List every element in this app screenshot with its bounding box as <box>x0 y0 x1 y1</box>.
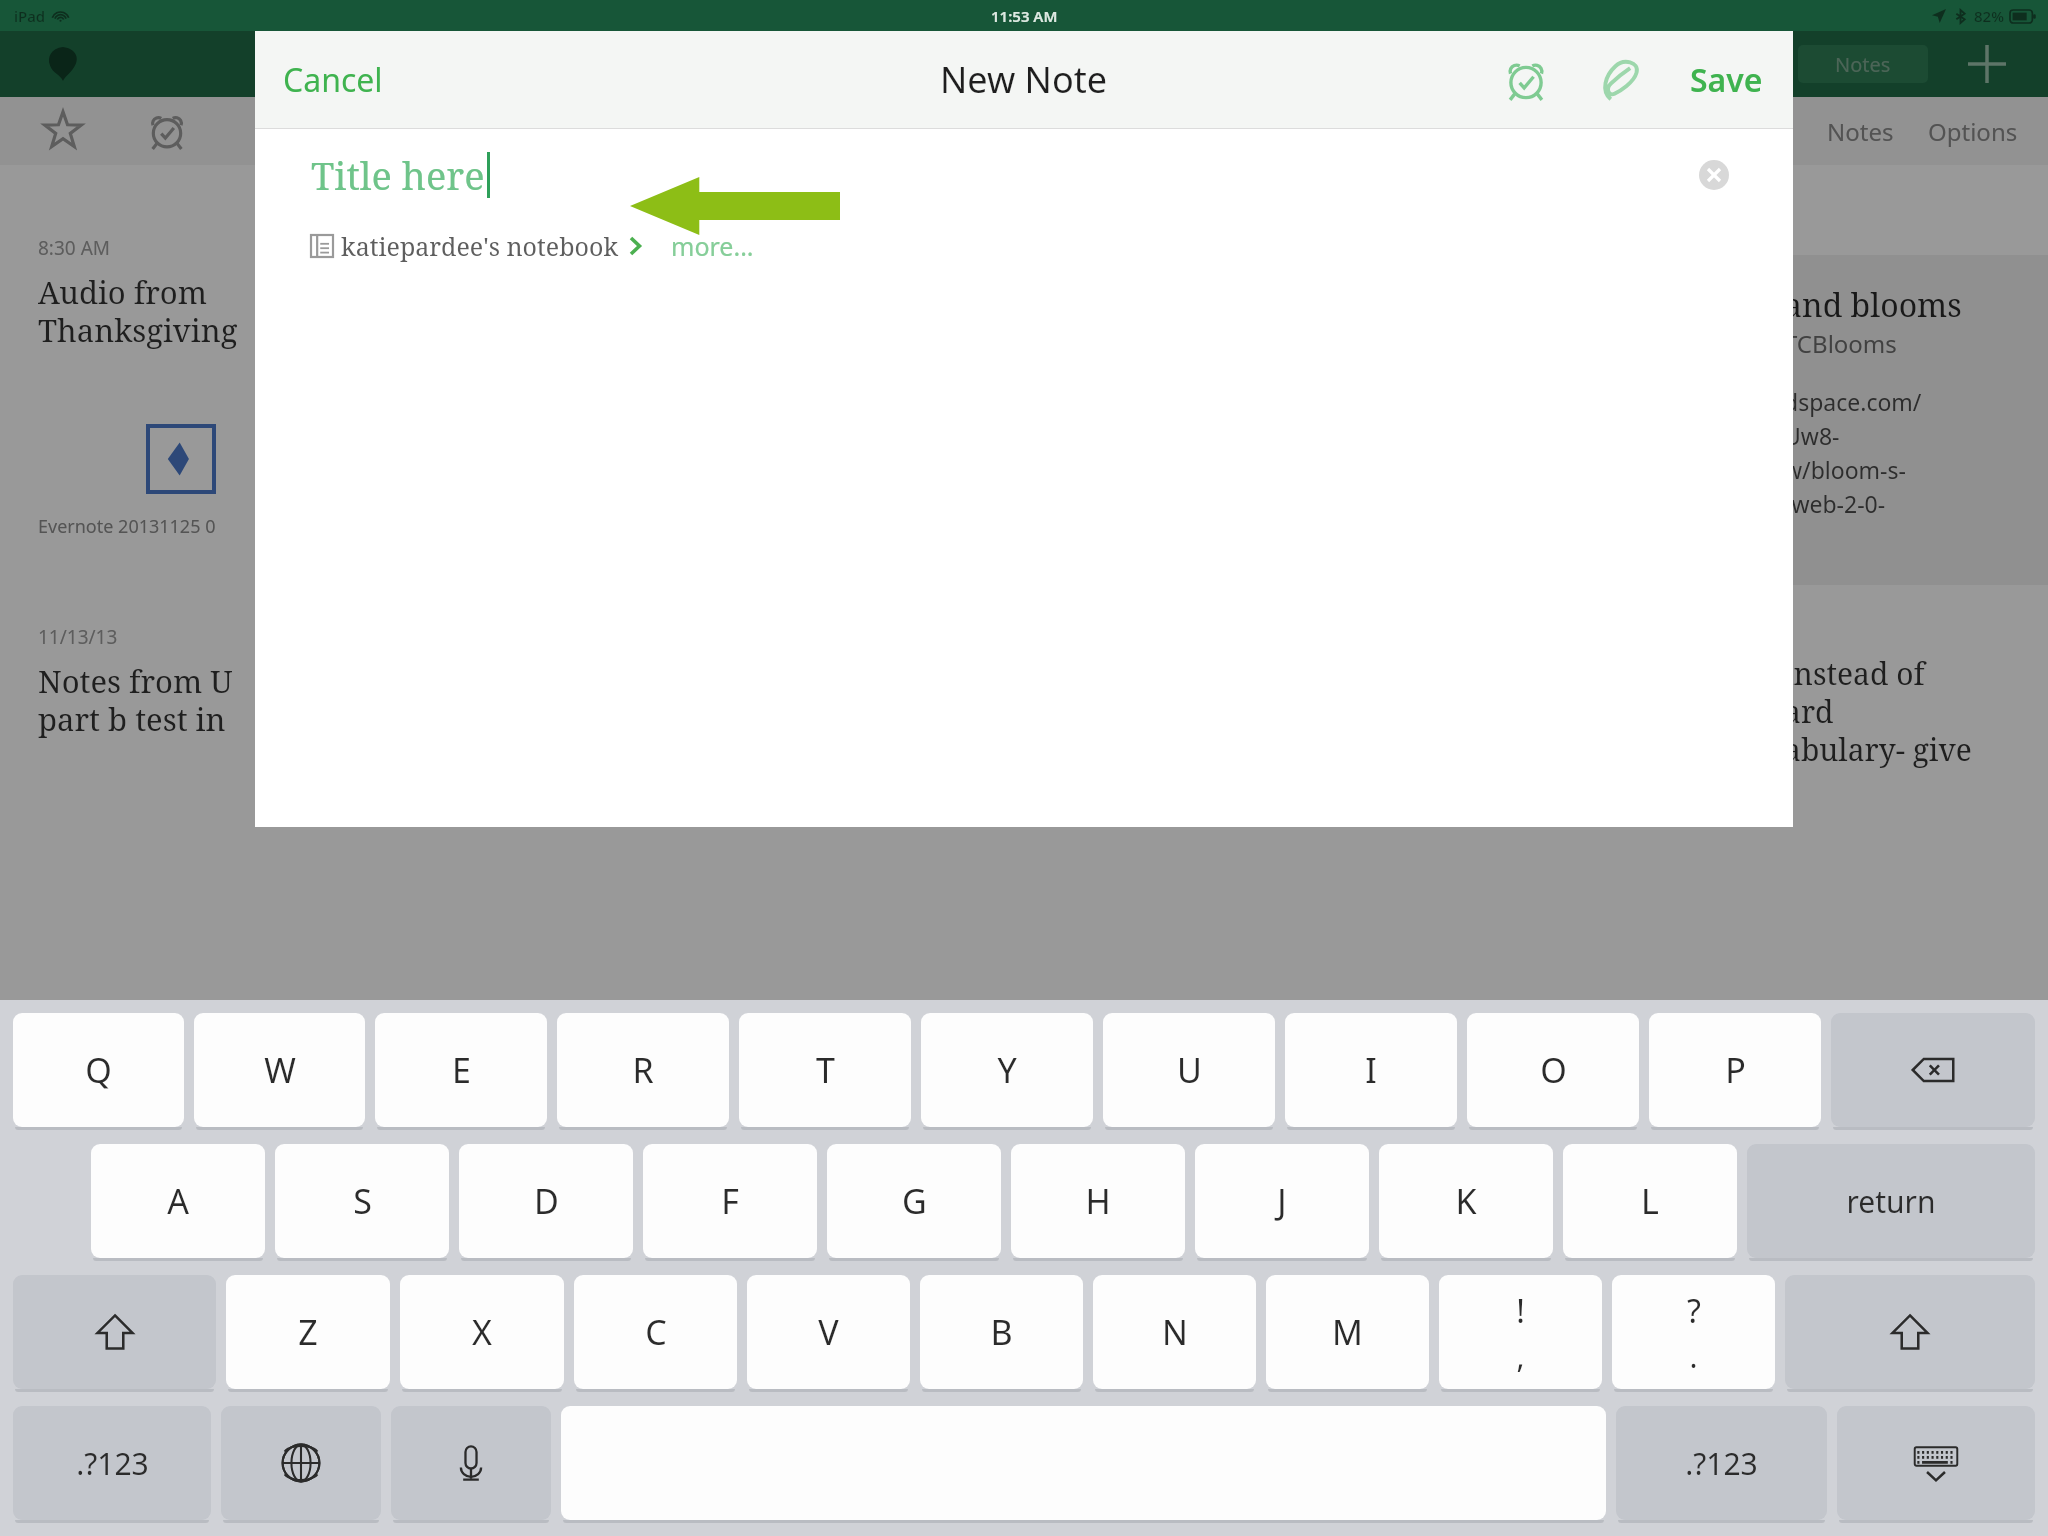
button[interactable]: katiepardee's notebook <box>311 223 643 269</box>
button[interactable]: E <box>375 1013 547 1127</box>
button[interactable]: D <box>459 1144 633 1258</box>
staticText: 11/13/13 <box>38 624 118 650</box>
staticText: F <box>721 1178 739 1224</box>
staticText: Audio from Thanksgiving <box>38 271 238 351</box>
button[interactable]: O <box>1467 1013 1639 1127</box>
staticText: Options <box>1928 115 2018 148</box>
button[interactable]: W <box>194 1013 365 1127</box>
staticText: C <box>645 1309 667 1355</box>
staticText: ? <box>1687 1289 1701 1333</box>
staticText: T <box>816 1047 835 1093</box>
staticText: H <box>1085 1178 1111 1224</box>
staticText: L <box>1641 1178 1659 1224</box>
staticText: S <box>353 1178 372 1224</box>
button[interactable]: ? <box>1612 1275 1775 1389</box>
button[interactable]: R <box>557 1013 729 1127</box>
staticText: A <box>167 1178 189 1224</box>
button[interactable]: .?123 <box>1616 1406 1827 1520</box>
button[interactable]: Cancel <box>283 58 383 102</box>
staticText: dspace.com/ Uw8- w/bloom-s- -web-2-0- <box>1784 386 1922 519</box>
button[interactable]: P <box>1649 1013 1821 1127</box>
staticText: Notes <box>1827 115 1894 148</box>
staticText: more... <box>671 229 754 263</box>
button[interactable]: G <box>827 1144 1001 1258</box>
button[interactable]: H <box>1011 1144 1185 1258</box>
staticText: return <box>1846 1181 1936 1222</box>
button[interactable]: L <box>1563 1144 1737 1258</box>
button[interactable]: Save <box>1690 58 1763 102</box>
staticText: 82% <box>1974 6 2004 26</box>
staticText: Notes from U part b test in <box>38 660 233 740</box>
staticText: R <box>632 1047 654 1093</box>
button[interactable]: V <box>747 1275 910 1389</box>
staticText: D <box>534 1178 559 1224</box>
staticText: and blooms <box>1784 283 1962 327</box>
button[interactable]: M <box>1266 1275 1429 1389</box>
staticText: V <box>818 1309 839 1355</box>
staticText: O <box>1540 1047 1567 1093</box>
staticText: J <box>1277 1178 1287 1224</box>
button[interactable]: B <box>920 1275 1083 1389</box>
staticText: W <box>264 1047 296 1093</box>
staticText: X <box>472 1309 492 1355</box>
button[interactable]: A <box>91 1144 265 1258</box>
button[interactable]: I <box>1285 1013 1457 1127</box>
button[interactable]: C <box>574 1275 737 1389</box>
staticText: I <box>1365 1047 1377 1093</box>
button[interactable]: Q <box>13 1013 184 1127</box>
staticText: M <box>1332 1309 1363 1355</box>
button[interactable]: Attach file <box>1590 50 1650 110</box>
button[interactable]: Shift <box>13 1275 216 1389</box>
button[interactable]: Clear title <box>1691 152 1737 198</box>
staticText: Notes <box>1835 51 1891 78</box>
staticText: G <box>902 1178 927 1224</box>
staticText: Save <box>1690 58 1763 102</box>
staticText: Y <box>997 1047 1017 1093</box>
staticText: .?123 <box>76 1443 149 1484</box>
button[interactable]: return <box>1747 1144 2035 1258</box>
staticText: .?123 <box>1685 1443 1758 1484</box>
staticText: 11:53 AM <box>991 6 1058 26</box>
button[interactable]: Set reminder <box>1496 50 1556 110</box>
staticText: New Note <box>940 55 1108 104</box>
button[interactable]: ! <box>1439 1275 1602 1389</box>
button[interactable]: S <box>275 1144 449 1258</box>
staticText: 8:30 AM <box>38 235 111 261</box>
button[interactable]: X <box>400 1275 564 1389</box>
staticText: K <box>1455 1178 1477 1224</box>
staticText: N <box>1162 1309 1188 1355</box>
button[interactable]: Y <box>921 1013 1093 1127</box>
staticText: Q <box>85 1047 112 1093</box>
button[interactable]: Shift <box>1785 1275 2035 1389</box>
staticText: iPad <box>14 6 46 26</box>
staticText: B <box>990 1309 1013 1355</box>
button[interactable]: Change keyboard <box>221 1406 381 1520</box>
staticText: P <box>1725 1047 1746 1093</box>
button[interactable]: J <box>1195 1144 1369 1258</box>
button[interactable]: N <box>1093 1275 1256 1389</box>
staticText: U <box>1177 1047 1202 1093</box>
button[interactable]: U <box>1103 1013 1275 1127</box>
button[interactable]: K <box>1379 1144 1553 1258</box>
button[interactable]: Z <box>226 1275 390 1389</box>
button[interactable]: .?123 <box>13 1406 211 1520</box>
button[interactable]: F <box>643 1144 817 1258</box>
staticText: TCBlooms <box>1784 327 1897 360</box>
staticText: Evernote 20131125 0 <box>38 514 216 539</box>
staticText: Z <box>298 1309 318 1355</box>
button[interactable]: Dictate <box>391 1406 551 1520</box>
button[interactable]: T <box>739 1013 911 1127</box>
staticText: ! <box>1516 1289 1525 1333</box>
staticText: Title here <box>311 149 485 201</box>
staticText: instead of ard abulary- give <box>1784 653 1972 770</box>
button[interactable]: Hide keyboard <box>1837 1406 2035 1520</box>
staticText: . <box>1689 1336 1698 1377</box>
button[interactable]: more... <box>667 223 758 269</box>
button[interactable]: Backspace <box>1831 1013 2035 1127</box>
staticText: , <box>1516 1336 1525 1377</box>
staticText: katiepardee's notebook <box>341 229 619 263</box>
staticText: E <box>452 1047 471 1093</box>
staticText: Cancel <box>283 58 383 102</box>
